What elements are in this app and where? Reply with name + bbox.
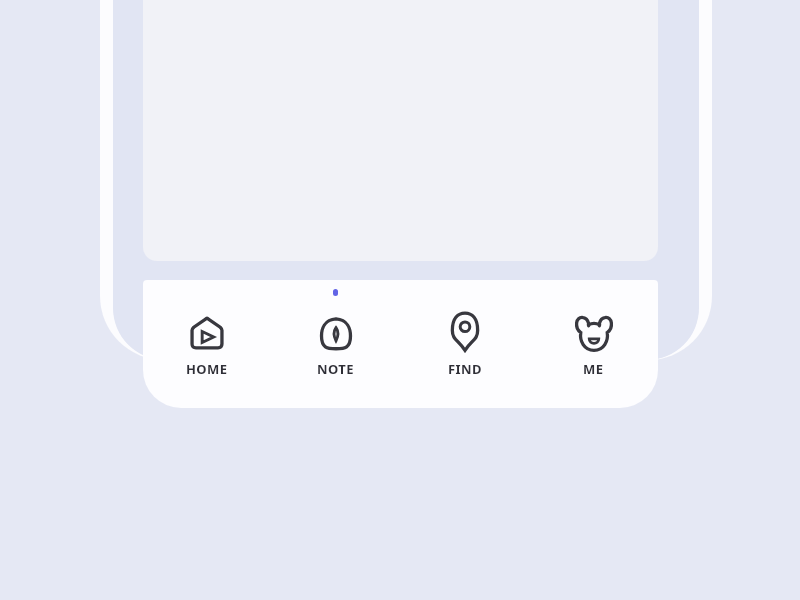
button[interactable]: Me tab — [529, 280, 658, 408]
button[interactable]: Home tab — [143, 280, 271, 408]
button[interactable]: Note tab — [271, 280, 400, 408]
staticText: NOTE — [317, 360, 354, 378]
staticText: ME — [583, 360, 604, 378]
button[interactable]: Find tab — [400, 280, 529, 408]
staticText: HOME — [186, 360, 228, 378]
staticText: FIND — [448, 360, 482, 378]
